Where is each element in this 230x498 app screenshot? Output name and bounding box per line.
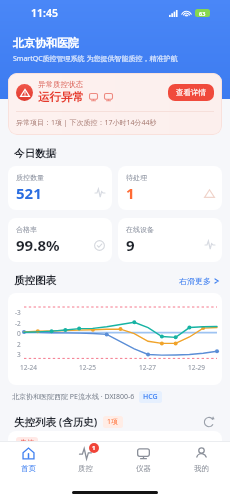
- button[interactable]: 异常质控状态: [8, 73, 222, 135]
- staticText: 运行异常: [38, 90, 84, 104]
- button[interactable]: 查看详情: [168, 84, 214, 101]
- staticText: 521: [16, 183, 42, 203]
- staticText: 3: [17, 350, 21, 359]
- staticText: 质控数量: [16, 173, 44, 182]
- staticText: 0: [17, 329, 21, 338]
- staticText: SmartQC质控管理系统 为您提供智能质控，精准护航: [13, 54, 178, 64]
- button[interactable]: 1: [57, 447, 114, 485]
- staticText: 质控: [78, 464, 93, 473]
- button[interactable]: 仪器: [114, 447, 172, 485]
- button[interactable]: 我的: [172, 447, 230, 485]
- button[interactable]: -3: [8, 293, 222, 385]
- staticText: 12-27: [139, 363, 156, 372]
- staticText: 异常项目：1项 | 下次质控：17小时14分44秒: [16, 118, 157, 128]
- staticText: 失控列表 (含历史): [14, 415, 98, 429]
- button[interactable]: 合格率: [8, 218, 112, 262]
- staticText: 1: [126, 183, 135, 203]
- staticText: -3: [15, 308, 21, 317]
- staticText: 北京协和医院: [13, 36, 79, 50]
- staticText: 质控图表: [14, 274, 56, 287]
- staticText: -2: [15, 319, 21, 328]
- staticText: 12-29: [188, 363, 205, 372]
- button[interactable]: 质控数量: [8, 166, 112, 210]
- button[interactable]: 待处理: [118, 166, 222, 210]
- staticText: 在线设备: [126, 225, 154, 234]
- staticText: 12-24: [20, 363, 37, 372]
- staticText: 99.8%: [16, 235, 60, 255]
- staticText: 查看详情: [176, 88, 206, 97]
- staticText: 9: [126, 235, 135, 255]
- button[interactable]: 失控: [8, 431, 222, 471]
- staticText: 12-25: [79, 363, 96, 372]
- button[interactable]: Refresh: [201, 414, 217, 430]
- staticText: 仪器: [136, 464, 151, 473]
- staticText: 今日数据: [14, 147, 56, 160]
- staticText: 63: [199, 10, 206, 17]
- staticText: 右滑更多: [179, 276, 211, 286]
- staticText: 异常质控状态: [38, 80, 83, 89]
- button[interactable]: 在线设备: [118, 218, 222, 262]
- button[interactable]: 首页: [0, 447, 57, 485]
- staticText: 1: [92, 444, 96, 452]
- staticText: 北京协和医院西院 PE流水线 · DXI800-6: [12, 392, 135, 402]
- staticText: 11:45: [31, 6, 58, 20]
- staticText: 合格率: [16, 225, 37, 234]
- staticText: 失控: [20, 438, 34, 447]
- staticText: 2: [17, 340, 21, 349]
- staticText: 我的: [194, 464, 209, 473]
- staticText: 1项: [107, 417, 119, 427]
- button[interactable]: 右滑更多: [179, 276, 219, 286]
- staticText: HCG: [143, 392, 158, 402]
- staticText: 首页: [21, 464, 36, 473]
- staticText: 待处理: [126, 173, 147, 182]
